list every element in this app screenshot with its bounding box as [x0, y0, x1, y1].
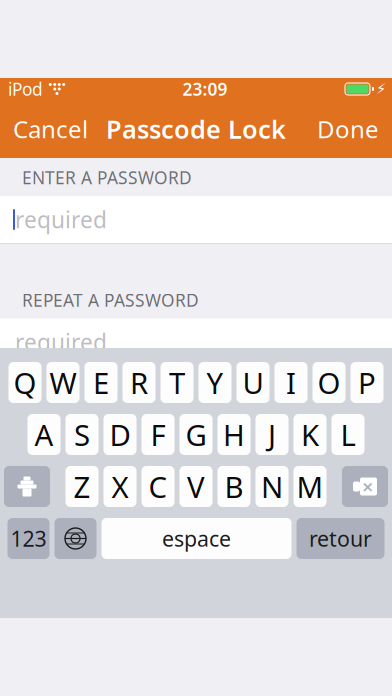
staticText: L: [340, 415, 355, 454]
button[interactable]: Next keyboard: [54, 518, 96, 559]
button[interactable]: V: [179, 466, 212, 507]
staticText: N: [261, 467, 283, 506]
button[interactable]: retour: [296, 518, 384, 559]
staticText: A: [34, 415, 53, 454]
staticText: S: [74, 415, 90, 454]
staticText: X: [111, 467, 128, 506]
button[interactable]: R: [122, 362, 155, 403]
button[interactable]: X: [103, 466, 136, 507]
button[interactable]: D: [103, 414, 136, 455]
button[interactable]: O: [312, 362, 345, 403]
staticText: E: [93, 363, 109, 402]
staticText: H: [223, 415, 245, 454]
button[interactable]: Done: [306, 103, 390, 155]
button[interactable]: required: [0, 318, 392, 365]
button[interactable]: S: [65, 414, 98, 455]
staticText: Passcode Lock: [106, 112, 286, 146]
staticText: U: [242, 363, 263, 402]
button[interactable]: A: [27, 414, 60, 455]
staticText: K: [301, 415, 319, 454]
staticText: Done: [317, 113, 379, 145]
button[interactable]: K: [293, 414, 326, 455]
button[interactable]: B: [217, 466, 250, 507]
staticText: Z: [73, 467, 90, 506]
button[interactable]: L: [331, 414, 364, 455]
button[interactable]: Shift: [4, 466, 50, 507]
button[interactable]: E: [84, 362, 117, 403]
staticText: D: [109, 415, 130, 454]
staticText: M: [296, 467, 323, 506]
staticText: C: [148, 467, 167, 506]
button[interactable]: espace: [101, 518, 291, 559]
staticText: O: [317, 363, 340, 402]
staticText: required: [15, 204, 107, 234]
staticText: ×: [362, 473, 373, 500]
staticText: 23:09: [182, 77, 227, 100]
staticText: F: [150, 415, 165, 454]
staticText: Cancel: [13, 113, 88, 145]
button[interactable]: Y: [198, 362, 231, 403]
button[interactable]: N: [255, 466, 288, 507]
staticText: ENTER A PASSWORD: [22, 166, 192, 189]
staticText: J: [268, 415, 276, 454]
button[interactable]: W: [46, 362, 79, 403]
staticText: P: [358, 363, 376, 402]
staticText: espace: [162, 524, 231, 553]
staticText: G: [185, 415, 206, 454]
staticText: ⚡︎: [376, 81, 386, 97]
button[interactable]: Cancel: [2, 103, 99, 155]
staticText: W: [49, 363, 76, 402]
button[interactable]: U: [236, 362, 269, 403]
staticText: B: [224, 467, 243, 506]
button[interactable]: G: [179, 414, 212, 455]
button[interactable]: F: [141, 414, 174, 455]
staticText: Q: [13, 363, 36, 402]
button[interactable]: T: [160, 362, 193, 403]
staticText: I: [286, 363, 296, 402]
button[interactable]: P: [350, 362, 383, 403]
staticText: 123: [10, 524, 46, 553]
button[interactable]: Q: [8, 362, 41, 403]
button[interactable]: H: [217, 414, 250, 455]
staticText: required: [15, 327, 107, 357]
staticText: retour: [309, 524, 372, 553]
button[interactable]: M: [293, 466, 326, 507]
staticText: T: [169, 363, 185, 402]
button[interactable]: C: [141, 466, 174, 507]
button[interactable]: 123: [7, 518, 49, 559]
staticText: R: [130, 363, 148, 402]
button[interactable]: Delete: [342, 466, 388, 507]
button[interactable]: I: [274, 362, 307, 403]
button[interactable]: required: [0, 196, 392, 243]
staticText: V: [187, 467, 205, 506]
staticText: iPod: [8, 77, 43, 100]
staticText: REPEAT A PASSWORD: [22, 288, 199, 311]
button[interactable]: J: [255, 414, 288, 455]
staticText: Y: [206, 363, 223, 402]
button[interactable]: Z: [65, 466, 98, 507]
